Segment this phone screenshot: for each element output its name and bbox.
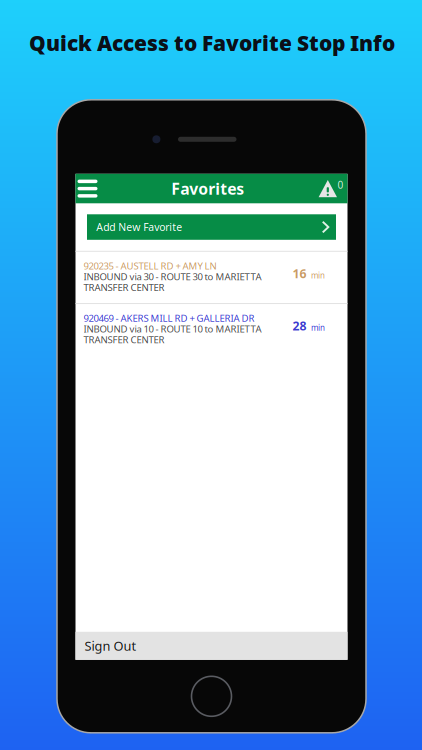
- button[interactable]: 920235 - AUSTELL RD + AMY LN: [75, 252, 347, 303]
- staticText: Add New Favorite: [96, 220, 182, 234]
- staticText: INBOUND via 10 - ROUTE 10 to MARIETTA: [83, 322, 261, 335]
- staticText: min: [311, 322, 325, 333]
- staticText: Sign Out: [84, 637, 136, 654]
- staticText: min: [311, 270, 325, 281]
- staticText: 28: [292, 317, 306, 334]
- staticText: Quick Access to Favorite Stop Info: [29, 29, 395, 57]
- button[interactable]: 920469 - AKERS MILL RD + GALLERIA DR: [75, 304, 347, 355]
- staticText: TRANSFER CENTER: [83, 281, 164, 293]
- staticText: 16: [292, 265, 306, 282]
- button[interactable]: Menu: [75, 174, 103, 203]
- staticText: Favorites: [171, 178, 244, 199]
- staticText: 920469 - AKERS MILL RD + GALLERIA DR: [83, 311, 254, 324]
- button[interactable]: Service alerts: [312, 174, 347, 203]
- staticText: 920235 - AUSTELL RD + AMY LN: [83, 259, 216, 272]
- button[interactable]: Sign Out: [75, 632, 347, 660]
- staticText: TRANSFER CENTER: [83, 333, 164, 346]
- button[interactable]: Add New Favorite: [87, 214, 336, 240]
- staticText: 0: [337, 178, 343, 192]
- staticText: INBOUND via 30 - ROUTE 30 to MARIETTA: [83, 270, 261, 283]
